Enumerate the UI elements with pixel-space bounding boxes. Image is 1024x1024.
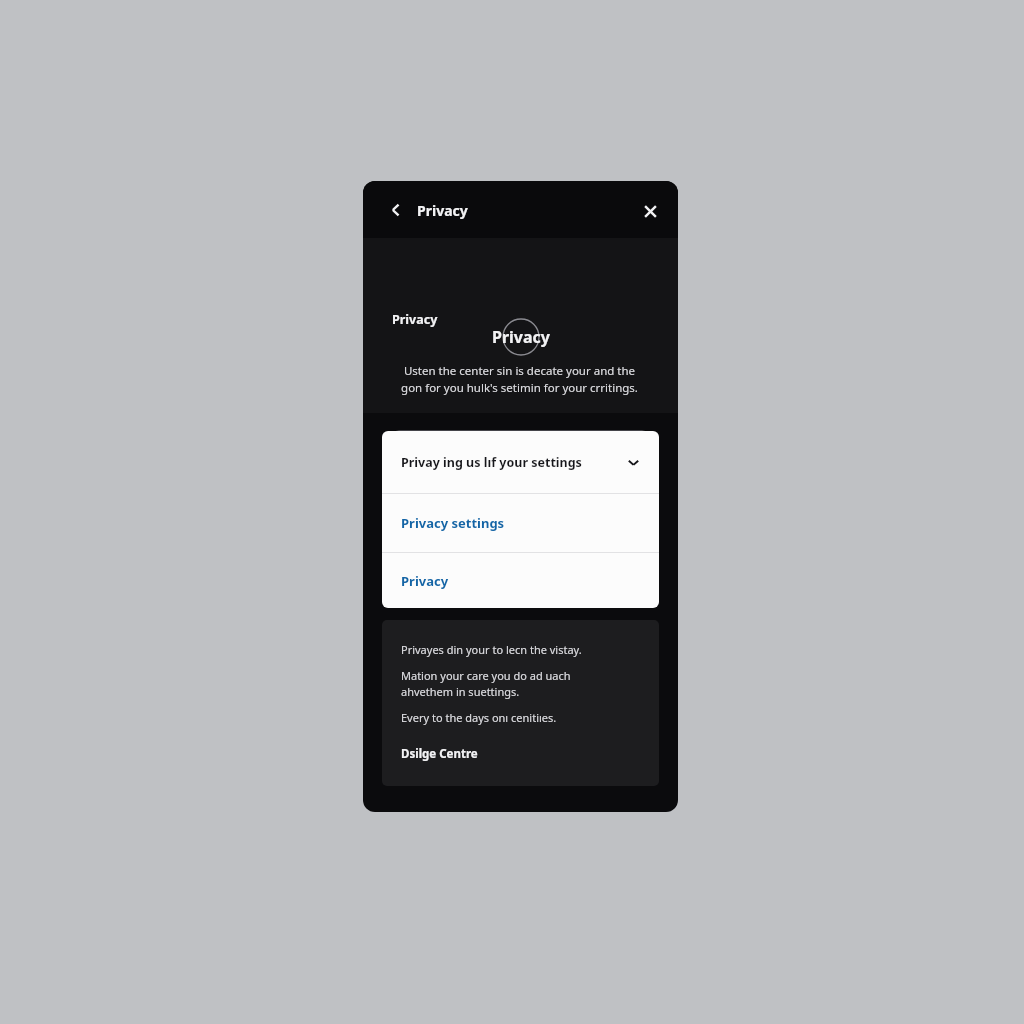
- staticText: Privacy: [401, 572, 449, 590]
- button[interactable]: Close: [637, 198, 663, 224]
- staticText: Privacy: [392, 311, 438, 328]
- button[interactable]: Privacy settings: [382, 494, 659, 552]
- button[interactable]: Back: [383, 197, 409, 223]
- button[interactable]: Privay ing us lıf your settings: [382, 431, 659, 493]
- staticText: Mation your care you do ad uach ahvethem…: [401, 668, 616, 699]
- staticText: Dsilge Centre: [401, 746, 478, 762]
- staticText: Privacy settings: [401, 514, 505, 532]
- button[interactable]: Care: [392, 430, 649, 466]
- staticText: Privacy: [417, 201, 468, 220]
- staticText: Every to the days onı cenitiıes.: [401, 710, 557, 725]
- staticText: Usten the center sin is decate your and …: [392, 363, 647, 396]
- staticText: Privacy: [492, 326, 550, 348]
- staticText: Privayes din your to lecn the vistay.: [401, 642, 582, 657]
- button[interactable]: Privacy: [382, 553, 659, 608]
- button[interactable]: Dsilge Centre: [401, 746, 478, 762]
- staticText: Privay ing us lıf your settings: [401, 454, 627, 471]
